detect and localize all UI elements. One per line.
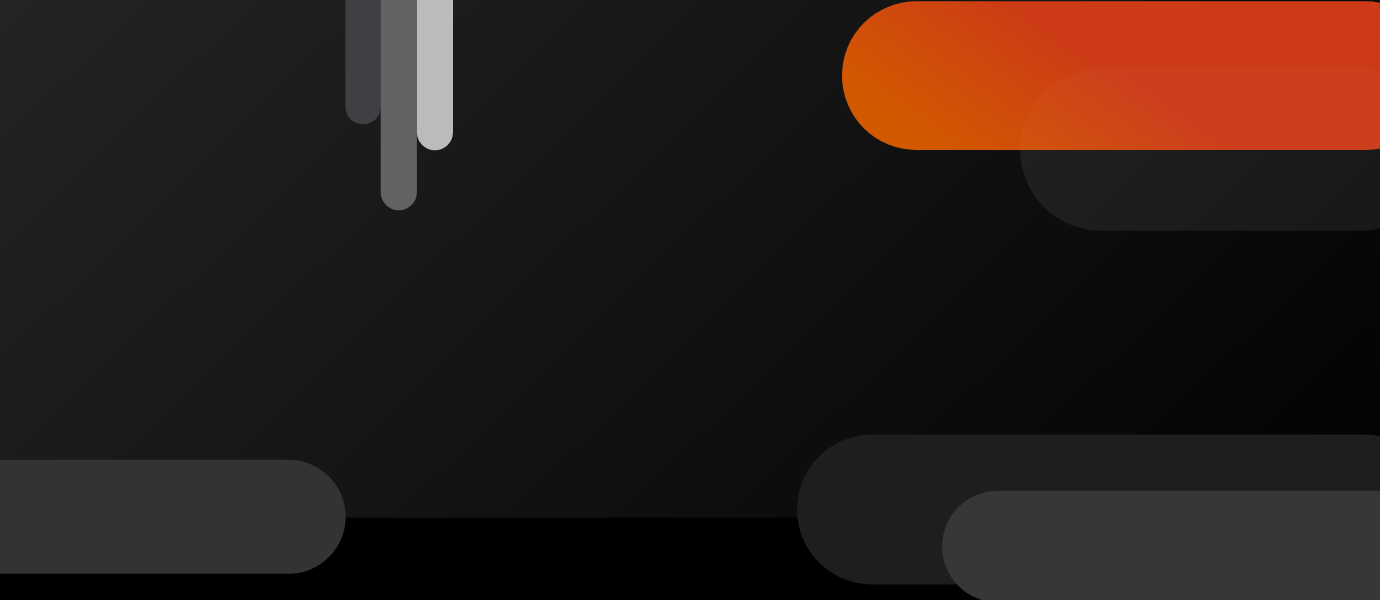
button[interactable]: Weekly summary bbox=[1020, 150, 1380, 231]
button[interactable]: Start workout bbox=[842, 1, 1380, 150]
button[interactable]: Share bbox=[942, 491, 1380, 600]
button[interactable]: Next day bbox=[797, 435, 1380, 585]
button[interactable]: Previous day bbox=[0, 460, 346, 574]
button[interactable]: Activity chart bbox=[345, 0, 453, 211]
